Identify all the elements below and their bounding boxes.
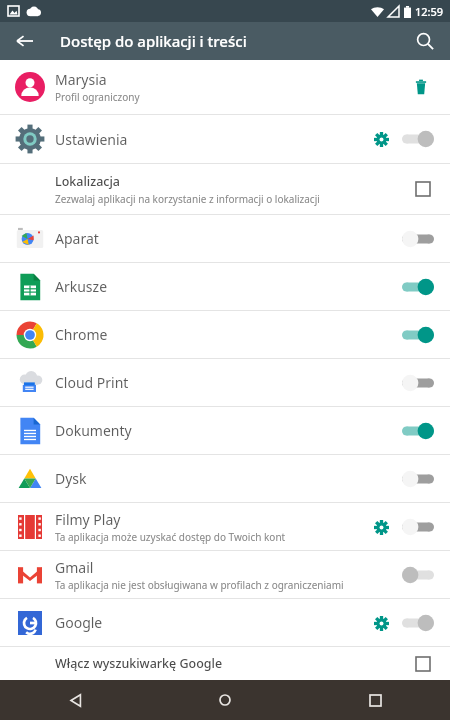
button[interactable]: Toggle bbox=[400, 322, 436, 348]
button[interactable]: Home bbox=[208, 683, 242, 717]
button[interactable]: Back bbox=[58, 683, 92, 717]
button[interactable]: Google bbox=[0, 599, 450, 646]
staticText: Cloud Print bbox=[55, 373, 129, 392]
staticText: Zezwalaj aplikacji na korzystanie z info… bbox=[55, 192, 320, 206]
staticText: Marysia bbox=[55, 70, 107, 89]
button[interactable]: Recent apps bbox=[358, 683, 392, 717]
button[interactable]: Back bbox=[8, 24, 42, 58]
staticText: Filmy Play bbox=[55, 510, 121, 529]
button[interactable]: Toggle bbox=[400, 274, 436, 300]
button[interactable]: Toggle bbox=[400, 466, 436, 492]
button[interactable]: App settings bbox=[368, 126, 394, 152]
button[interactable]: Aparat bbox=[0, 215, 450, 262]
button[interactable]: Toggle bbox=[400, 514, 436, 540]
button[interactable]: Gmail bbox=[0, 551, 450, 598]
button[interactable]: Marysia bbox=[0, 60, 450, 114]
button[interactable]: Delete profile bbox=[406, 72, 436, 102]
staticText: Dostęp do aplikacji i treści bbox=[60, 31, 247, 51]
button[interactable]: Checkbox bbox=[410, 176, 436, 202]
staticText: Aparat bbox=[55, 229, 99, 248]
button[interactable]: Toggle bbox=[400, 562, 436, 588]
staticText: Ta aplikacja nie jest obsługiwana w prof… bbox=[55, 578, 344, 592]
button[interactable]: Arkusze bbox=[0, 263, 450, 310]
button[interactable]: App settings bbox=[368, 514, 394, 540]
button[interactable]: Toggle bbox=[400, 418, 436, 444]
button[interactable]: Dokumenty bbox=[0, 407, 450, 454]
staticText: Dokumenty bbox=[55, 421, 132, 440]
button[interactable]: Ustawienia bbox=[0, 115, 450, 163]
staticText: Arkusze bbox=[55, 277, 108, 296]
button[interactable]: Filmy Play bbox=[0, 503, 450, 550]
button[interactable]: Włącz wyszukiwarkę Google bbox=[0, 647, 450, 680]
staticText: Lokalizacja bbox=[55, 173, 120, 190]
button[interactable]: Lokalizacja bbox=[0, 164, 450, 214]
button[interactable]: Checkbox bbox=[410, 651, 436, 677]
staticText: Ustawienia bbox=[55, 130, 368, 149]
button[interactable]: Chrome bbox=[0, 311, 450, 358]
staticText: 12:59 bbox=[415, 4, 444, 19]
button[interactable]: Toggle bbox=[400, 126, 436, 152]
button[interactable]: Toggle bbox=[400, 610, 436, 636]
button[interactable]: Toggle bbox=[400, 226, 436, 252]
staticText: Dysk bbox=[55, 469, 87, 488]
button[interactable]: Toggle bbox=[400, 370, 436, 396]
button[interactable]: App settings bbox=[368, 610, 394, 636]
staticText: Gmail bbox=[55, 558, 94, 577]
staticText: Chrome bbox=[55, 325, 108, 344]
staticText: Ta aplikacja może uzyskać dostęp do Twoi… bbox=[55, 530, 286, 544]
staticText: Google bbox=[55, 613, 103, 632]
staticText: Włącz wyszukiwarkę Google bbox=[55, 655, 410, 672]
button[interactable]: Dysk bbox=[0, 455, 450, 502]
button[interactable]: Cloud Print bbox=[0, 359, 450, 406]
staticText: Profil ograniczony bbox=[55, 90, 140, 104]
button[interactable]: Search bbox=[408, 24, 442, 58]
